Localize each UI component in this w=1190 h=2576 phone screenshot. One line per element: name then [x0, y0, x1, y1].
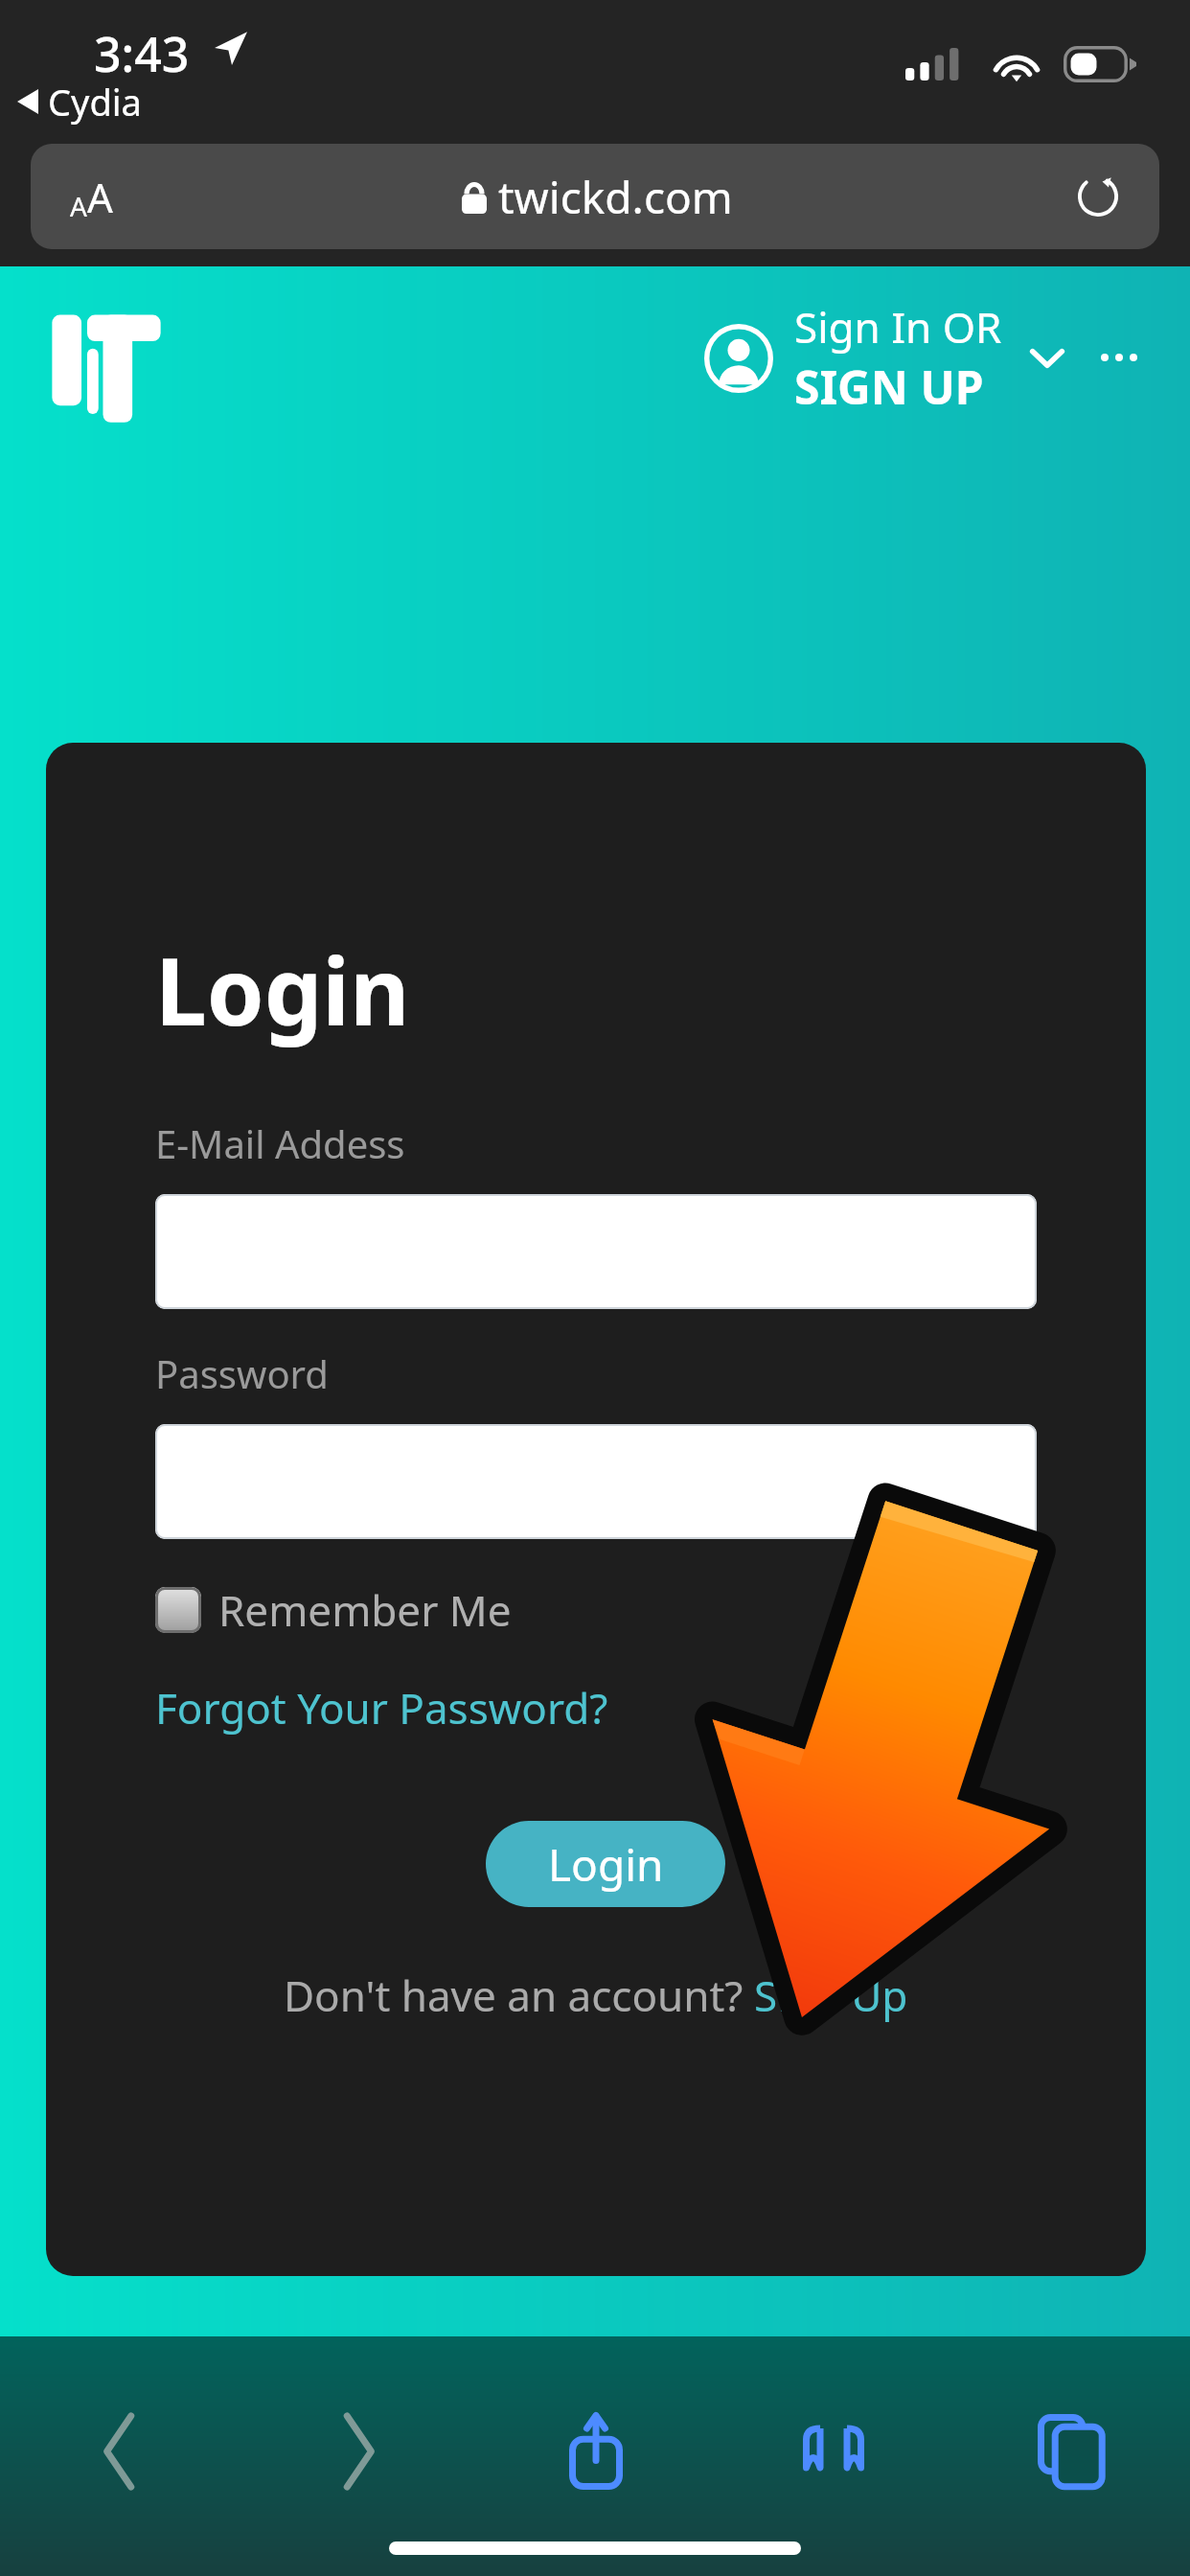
- staticText: Cydia: [48, 77, 142, 126]
- staticText: Password: [155, 1347, 329, 1399]
- button[interactable]: [155, 1424, 1037, 1539]
- staticText: twickd.com: [498, 167, 733, 227]
- button[interactable]: Back: [0, 2394, 239, 2509]
- button[interactable]: Text size options: [57, 163, 125, 230]
- staticText: Remember Me: [218, 1581, 512, 1639]
- button[interactable]: Login: [486, 1821, 725, 1907]
- staticText: Don't have an account?: [284, 1966, 754, 2024]
- button[interactable]: Sign Up: [754, 1966, 908, 2024]
- button[interactable]: Tabs: [952, 2394, 1190, 2509]
- staticText: Login: [548, 1834, 664, 1895]
- staticText: A: [70, 188, 87, 224]
- button[interactable]: Sign In OR: [704, 298, 1067, 418]
- button[interactable]: Reload page: [1069, 168, 1127, 225]
- button[interactable]: [155, 1194, 1037, 1309]
- button[interactable]: Text size options: [31, 144, 1159, 249]
- staticText: 3:43: [94, 21, 190, 86]
- staticText: E-Mail Addess: [155, 1117, 405, 1169]
- button[interactable]: Bookmarks: [715, 2394, 952, 2509]
- button[interactable]: Remember Me: [155, 1581, 512, 1639]
- staticText: A: [87, 170, 113, 224]
- staticText: SIGN UP: [794, 356, 984, 418]
- button[interactable]: Twickd home: [50, 309, 163, 414]
- button[interactable]: Share: [477, 2394, 715, 2509]
- staticText: Sign In OR: [794, 298, 1002, 356]
- button[interactable]: Forgot Your Password?: [155, 1679, 608, 1736]
- button[interactable]: More options: [1087, 329, 1152, 386]
- button[interactable]: Forward: [239, 2394, 477, 2509]
- staticText: Login: [155, 927, 410, 1052]
